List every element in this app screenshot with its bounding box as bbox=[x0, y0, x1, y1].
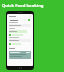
button[interactable]: Profile bbox=[6, 11, 34, 70]
button[interactable]: Confirm option bbox=[9, 43, 11, 45]
button[interactable]: QR code bbox=[9, 51, 31, 59]
button[interactable] bbox=[9, 39, 31, 42]
button[interactable] bbox=[9, 18, 31, 21]
button[interactable] bbox=[9, 30, 27, 33]
staticText: Quick Food booking bbox=[2, 3, 44, 9]
button[interactable] bbox=[9, 24, 31, 27]
button[interactable]: Select option bbox=[9, 34, 11, 36]
